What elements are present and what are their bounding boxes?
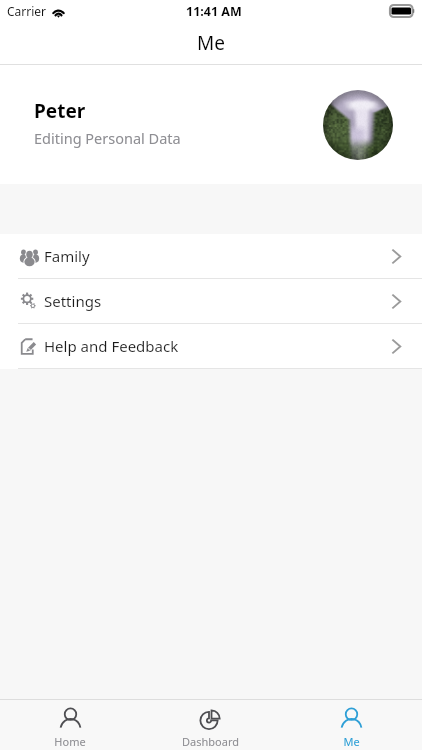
staticText: Help and Feedback	[44, 336, 179, 356]
staticText: Dashboard	[182, 734, 239, 749]
button[interactable]: Settings	[0, 279, 422, 323]
staticText: Home	[54, 734, 86, 749]
button[interactable]: Dashboard	[140, 700, 281, 750]
staticText: 11:41 AM	[186, 3, 242, 20]
staticText: Me	[343, 734, 360, 749]
staticText: Carrier	[7, 3, 47, 19]
button[interactable]: Help and Feedback	[0, 324, 422, 368]
staticText: Settings	[44, 291, 102, 311]
button[interactable]: Peter	[0, 65, 422, 184]
staticText: Family	[44, 246, 90, 266]
staticText: Me	[197, 30, 225, 56]
image: Profile photo	[323, 90, 393, 160]
staticText: Editing Personal Data	[34, 128, 181, 148]
button[interactable]: Family	[0, 234, 422, 278]
staticText: Peter	[34, 98, 86, 124]
button[interactable]: Me	[281, 700, 422, 750]
button[interactable]: Home	[0, 700, 140, 750]
